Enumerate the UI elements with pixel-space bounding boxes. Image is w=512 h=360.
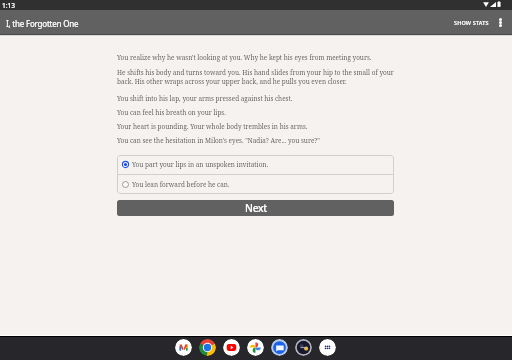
staticText: I, the Forgotten One <box>6 18 79 29</box>
button[interactable]: You lean forward before he can. <box>117 175 394 194</box>
staticText: You shift into his lap, your arms presse… <box>117 94 293 103</box>
staticText: You realize why he wasn't looking at you… <box>117 53 372 62</box>
button[interactable]: SHOW STATS <box>448 14 490 31</box>
button[interactable]: Messages <box>271 339 288 356</box>
button[interactable]: More options <box>490 10 510 34</box>
staticText: Next <box>245 201 267 215</box>
button[interactable]: You part your lips in an unspoken invita… <box>117 155 394 174</box>
button[interactable]: All apps <box>319 339 336 356</box>
button[interactable]: Next <box>117 200 394 216</box>
button[interactable]: Gmail <box>175 339 192 356</box>
button[interactable]: Photos <box>247 339 264 356</box>
staticText: You lean forward before he can. <box>132 180 230 189</box>
button[interactable]: Chrome <box>199 339 216 356</box>
button[interactable]: YouTube <box>223 339 240 356</box>
staticText: SHOW STATS <box>454 19 489 26</box>
button[interactable]: Meet <box>295 339 312 356</box>
staticText: You can feel his breath on your lips. <box>117 108 226 117</box>
staticText: He shifts his body and turns toward you.… <box>117 68 394 86</box>
staticText: 1:13 <box>2 1 16 10</box>
staticText: You part your lips in an unspoken invita… <box>132 160 269 169</box>
staticText: Your heart is pounding. Your whole body … <box>117 122 308 131</box>
staticText: You can see the hesitation in Milon's ey… <box>117 136 320 145</box>
